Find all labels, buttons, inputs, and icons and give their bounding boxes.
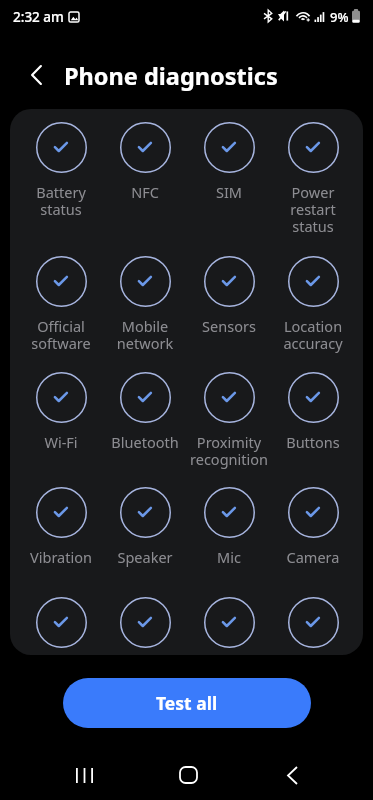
button[interactable]: NFC bbox=[103, 122, 187, 232]
staticText: Battery status bbox=[19, 182, 103, 219]
button[interactable]: Buttons bbox=[271, 372, 355, 482]
staticText: NFC bbox=[103, 182, 187, 202]
button[interactable]: SIM bbox=[187, 122, 271, 232]
button[interactable]: Home bbox=[164, 751, 212, 799]
staticText: SIM bbox=[187, 182, 271, 202]
staticText: Power restart status bbox=[271, 182, 355, 232]
staticText: Phone diagnostics bbox=[64, 60, 278, 92]
staticText: 9% bbox=[330, 8, 349, 26]
button[interactable]: Official software bbox=[19, 256, 103, 366]
button[interactable]: Diagnostic test passed bbox=[19, 597, 103, 648]
staticText: Speaker bbox=[103, 547, 187, 567]
button[interactable]: Diagnostic test passed bbox=[103, 597, 187, 648]
button[interactable]: Camera bbox=[271, 487, 355, 597]
button[interactable]: Power restart status bbox=[271, 122, 355, 232]
staticText: Mobile network bbox=[103, 316, 187, 353]
staticText: Sensors bbox=[187, 316, 271, 336]
staticText: 2:32 am bbox=[13, 8, 64, 26]
staticText: Mic bbox=[187, 547, 271, 567]
button[interactable]: Vibration bbox=[19, 487, 103, 597]
staticText: Camera bbox=[271, 547, 355, 567]
staticText: Vibration bbox=[19, 547, 103, 567]
staticText: Buttons bbox=[271, 432, 355, 452]
button[interactable]: Wi-Fi bbox=[19, 372, 103, 482]
button[interactable]: Battery status bbox=[19, 122, 103, 232]
button[interactable]: Location accuracy bbox=[271, 256, 355, 366]
button[interactable]: Speaker bbox=[103, 487, 187, 597]
button[interactable]: Back bbox=[17, 56, 55, 94]
staticText: Location accuracy bbox=[271, 316, 355, 353]
button[interactable]: Bluetooth bbox=[103, 372, 187, 482]
button[interactable]: Proximity recognition bbox=[187, 372, 271, 482]
button[interactable]: Test all bbox=[63, 678, 311, 728]
staticText: Wi-Fi bbox=[19, 432, 103, 452]
button[interactable]: Diagnostic test passed bbox=[271, 597, 355, 648]
staticText: Bluetooth bbox=[103, 432, 187, 452]
staticText: Test all bbox=[156, 691, 218, 715]
button[interactable]: Mobile network bbox=[103, 256, 187, 366]
staticText: Proximity recognition bbox=[187, 432, 271, 469]
button[interactable]: Sensors bbox=[187, 256, 271, 366]
button[interactable]: Diagnostic test passed bbox=[187, 597, 271, 648]
button[interactable]: Back bbox=[268, 751, 316, 799]
staticText: Official software bbox=[19, 316, 103, 353]
button[interactable]: Recent apps bbox=[60, 751, 108, 799]
button[interactable]: Mic bbox=[187, 487, 271, 597]
